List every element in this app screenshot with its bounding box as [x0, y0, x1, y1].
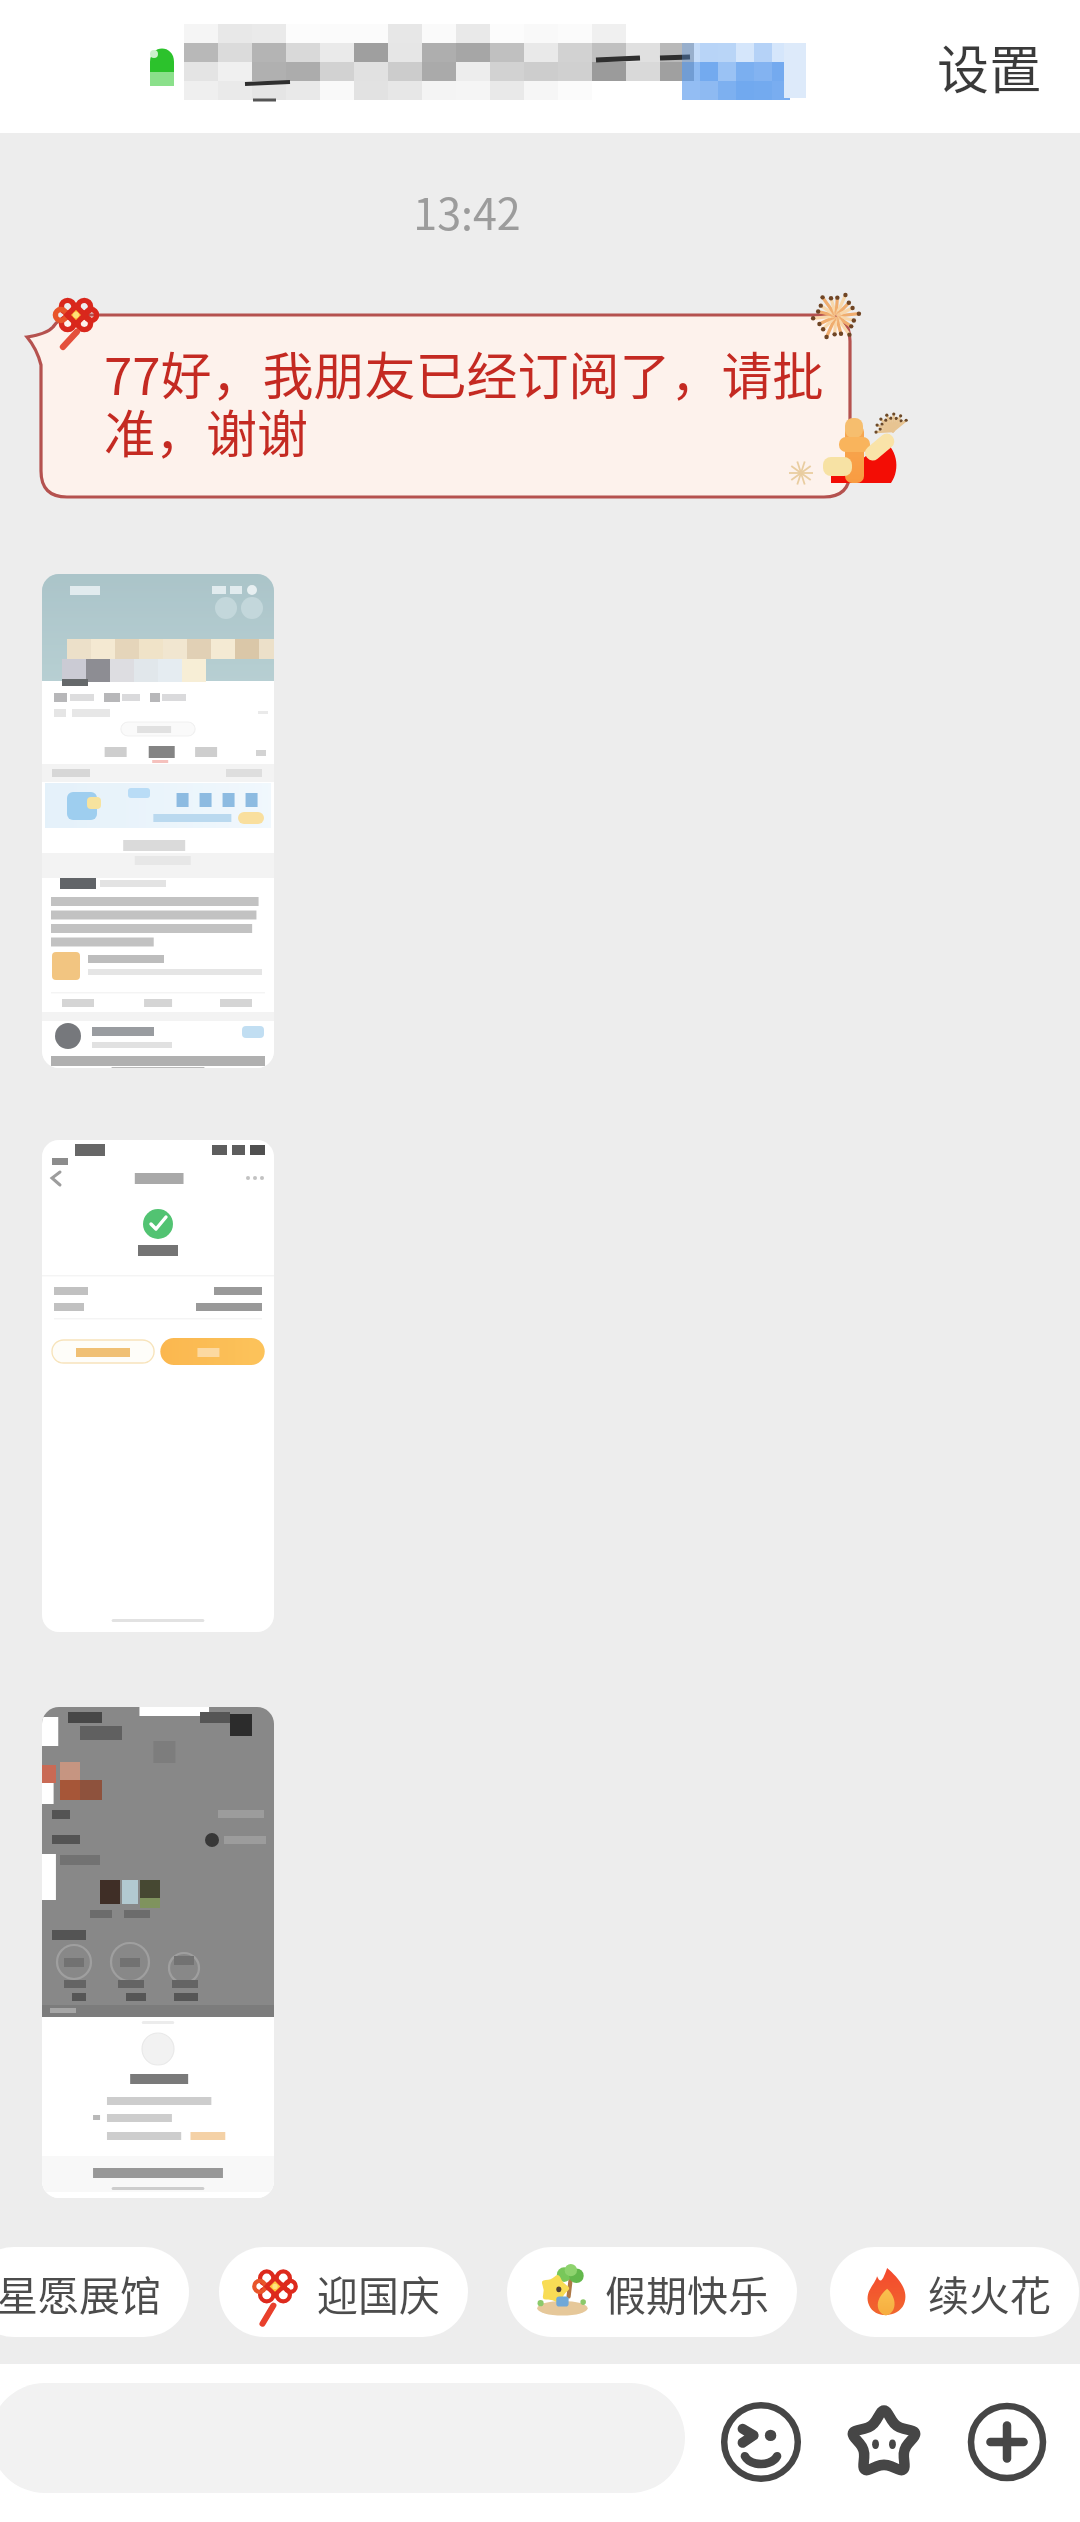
button[interactable]: Stickers	[841, 2399, 927, 2485]
button[interactable]: Screenshot: payment success	[42, 1140, 274, 1632]
button[interactable]: 77好，我朋友已经订阅了，请批 准，谢谢	[27, 298, 867, 508]
button[interactable]: 设置	[913, 11, 1080, 122]
button[interactable]: 假期快乐	[507, 2247, 797, 2337]
button[interactable]: 星愿展馆	[0, 2247, 189, 2337]
button[interactable]: 续火花	[830, 2247, 1079, 2337]
button[interactable]: 迎国庆	[219, 2247, 468, 2337]
button[interactable]: Screenshot: dialog	[42, 1707, 274, 2198]
staticText: 设置	[937, 29, 1042, 104]
staticText: 续火花	[928, 2263, 1051, 2322]
staticText: 星愿展馆	[0, 2263, 161, 2322]
staticText: 77好，我朋友已经订阅了，请批 准，谢谢	[104, 336, 864, 468]
staticText: 迎国庆	[317, 2263, 440, 2322]
staticText: 假期快乐	[605, 2263, 769, 2322]
staticText: 13:42	[0, 180, 1007, 242]
button[interactable]: Screenshot: feed	[42, 574, 274, 1068]
button[interactable]: Emoji	[718, 2399, 804, 2485]
button[interactable]: More	[964, 2399, 1050, 2485]
